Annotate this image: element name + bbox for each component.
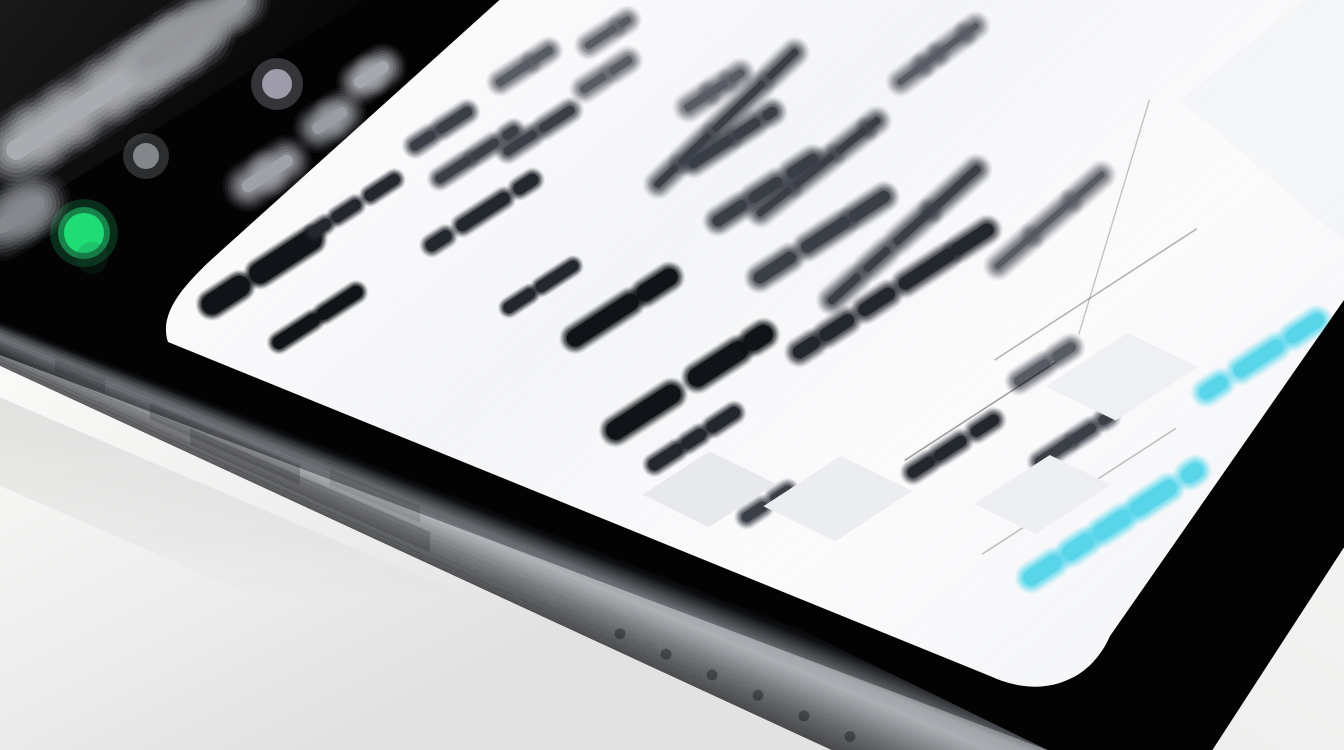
button[interactable]: Phone showing app card [0,0,1344,750]
